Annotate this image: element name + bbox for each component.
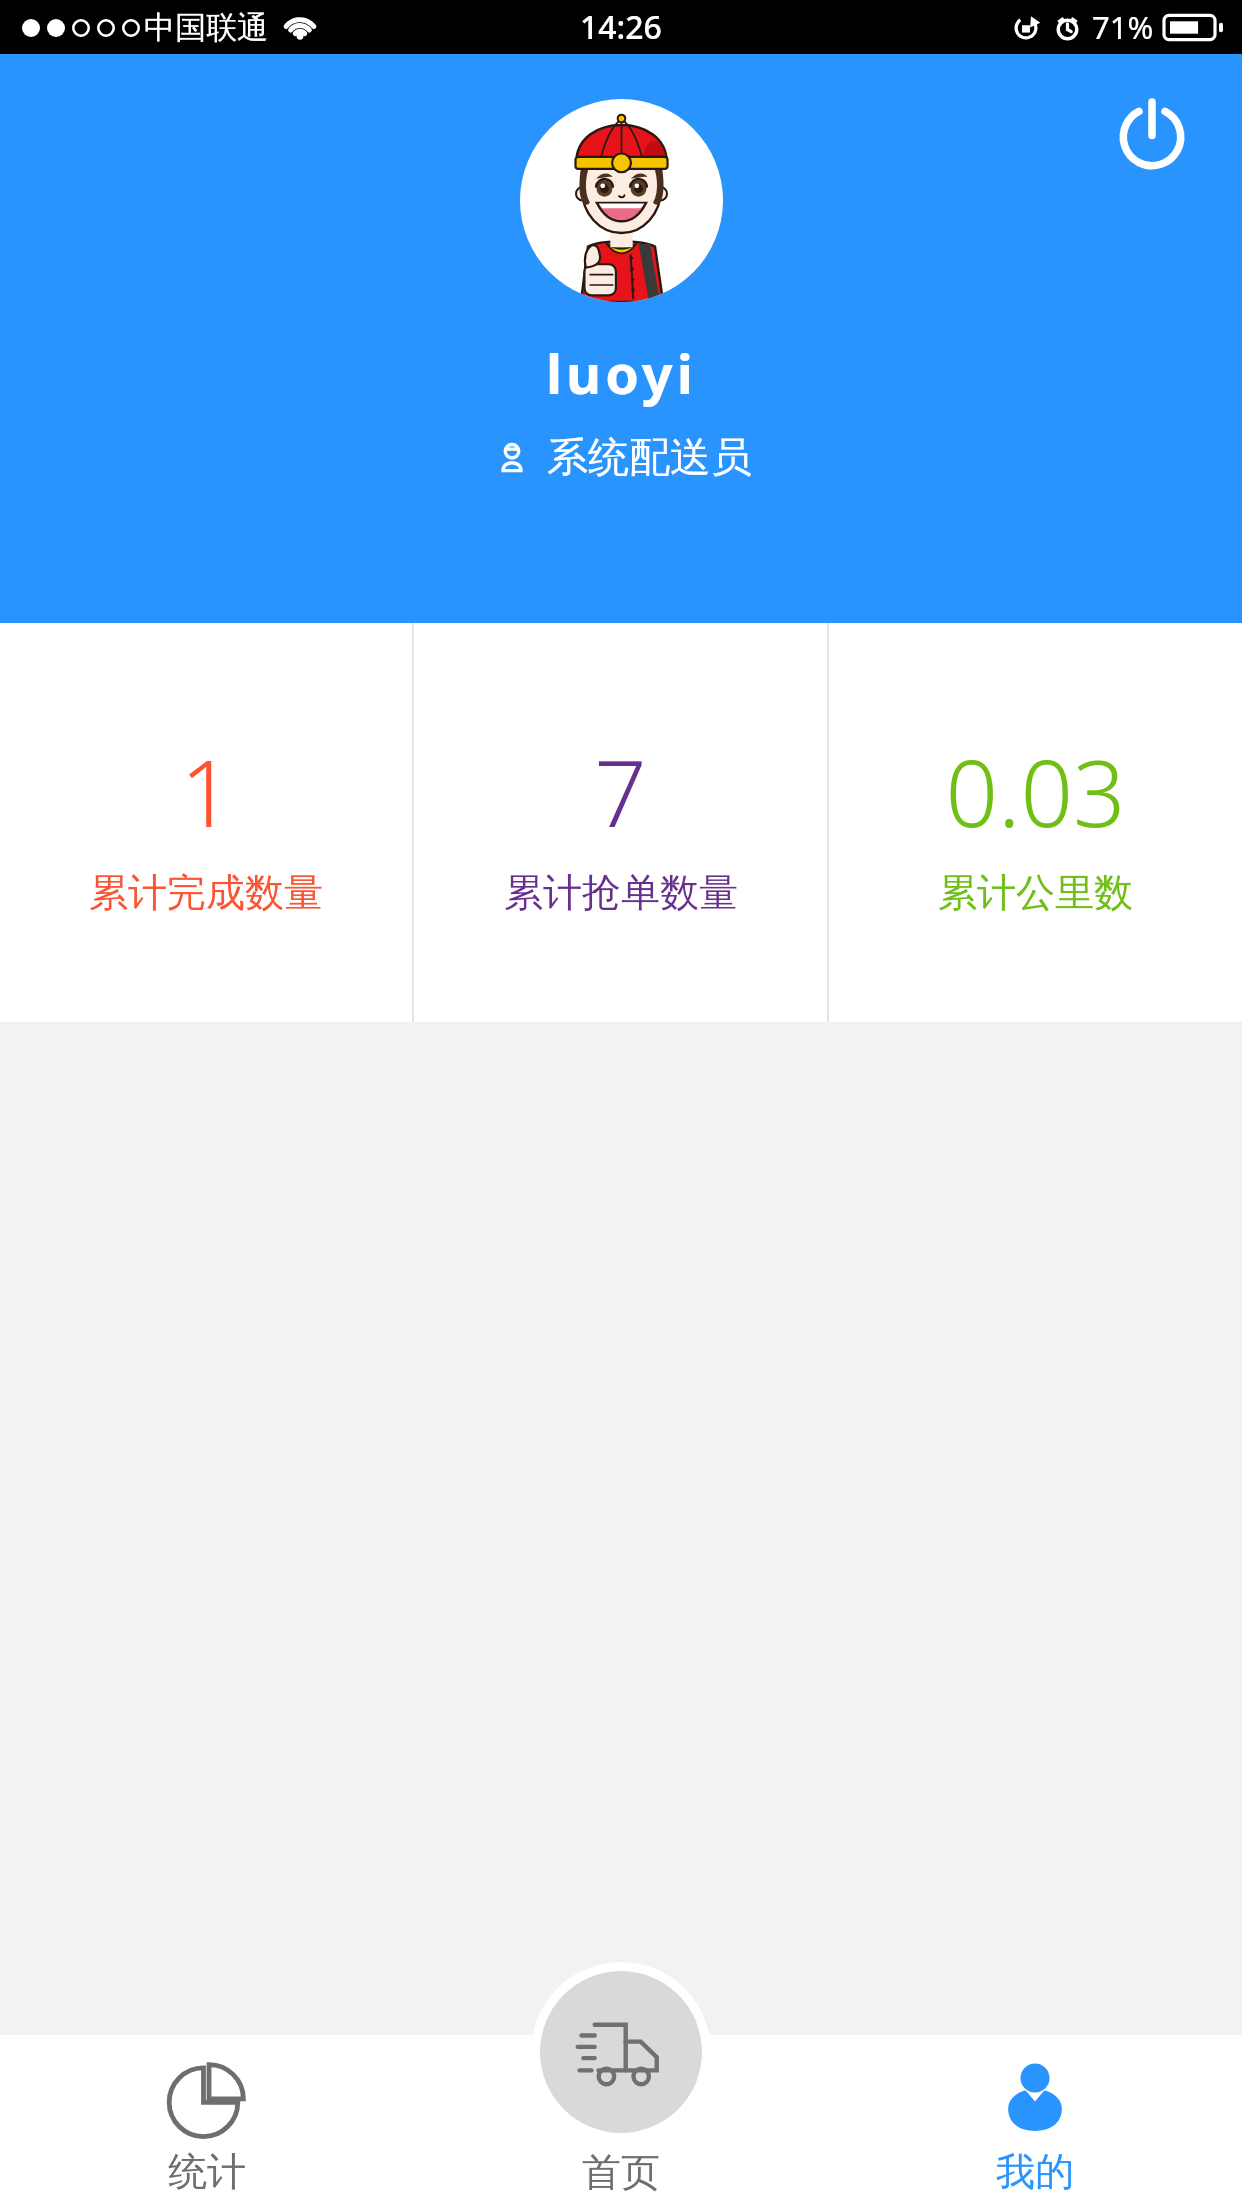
button[interactable]: 用户头像 <box>520 99 723 302</box>
staticText: 14:26 <box>580 5 662 49</box>
staticText: 累计抢单数量 <box>504 868 738 917</box>
button[interactable]: 0.03 <box>829 623 1242 1022</box>
staticText: 7 <box>594 729 647 854</box>
staticText: 首页 <box>582 2148 660 2197</box>
button[interactable]: 7 <box>414 623 827 1022</box>
button[interactable]: 我的 <box>828 2035 1242 2208</box>
button[interactable]: 1 <box>0 623 412 1022</box>
button[interactable]: 退出登录 <box>1104 86 1200 182</box>
staticText: 0.03 <box>945 729 1126 854</box>
staticText: 系统配送员 <box>547 432 752 484</box>
staticText: 中国联通 <box>144 8 268 47</box>
staticText: 统计 <box>168 2147 246 2196</box>
button[interactable]: 首页 <box>471 1958 771 2208</box>
button[interactable]: 统计 <box>0 2035 414 2208</box>
staticText: 我的 <box>996 2147 1074 2196</box>
staticText: 1 <box>180 729 233 854</box>
staticText: 累计公里数 <box>938 868 1133 917</box>
staticText: 累计完成数量 <box>89 868 323 917</box>
staticText: luoyi <box>546 336 697 410</box>
staticText: 71% <box>1092 6 1154 48</box>
